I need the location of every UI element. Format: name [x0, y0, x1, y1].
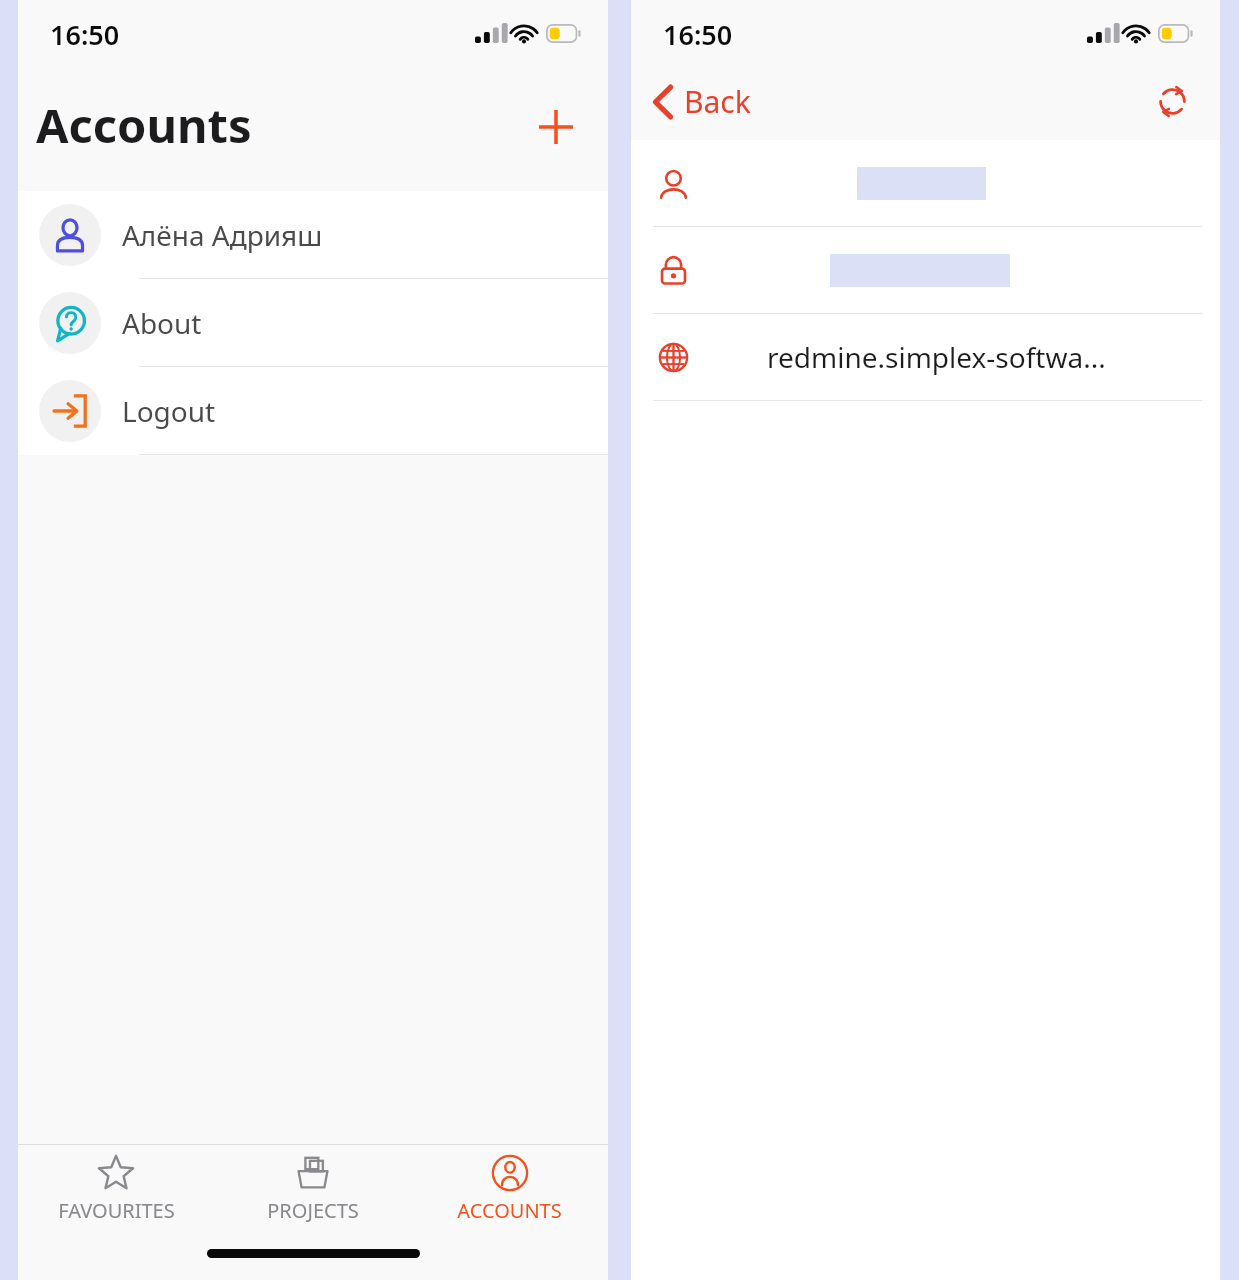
staticText: 16:50	[663, 16, 733, 53]
staticText: redmine.simplex-softwa...	[767, 338, 1106, 376]
button[interactable]: FAVOURITES	[18, 1154, 214, 1224]
button[interactable]: redmine.simplex-softwa...	[631, 314, 1220, 400]
button[interactable]: Logout	[18, 367, 608, 454]
button[interactable]: ACCOUNTS	[411, 1154, 608, 1224]
button[interactable]: PROJECTS	[214, 1154, 411, 1224]
button[interactable]: Back	[653, 81, 751, 122]
staticText: Алёна Адрияш	[122, 216, 323, 254]
staticText: PROJECTS	[267, 1197, 359, 1224]
button[interactable]: Алёна Адрияш	[18, 191, 608, 278]
staticText: Logout	[122, 392, 216, 430]
button[interactable]: Add account	[528, 99, 584, 155]
staticText: FAVOURITES	[58, 1197, 175, 1224]
button[interactable]	[631, 140, 1220, 226]
staticText: Accounts	[36, 93, 252, 157]
staticText: About	[122, 304, 202, 342]
staticText: 16:50	[50, 16, 120, 53]
staticText: ACCOUNTS	[457, 1197, 562, 1224]
button[interactable]: Refresh	[1146, 75, 1198, 127]
button[interactable]	[631, 227, 1220, 313]
staticText: Back	[684, 81, 751, 122]
button[interactable]: About	[18, 279, 608, 366]
